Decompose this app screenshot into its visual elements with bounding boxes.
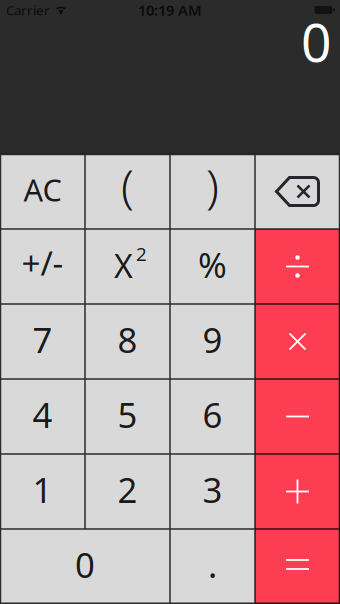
staticText: 8 (117, 316, 137, 362)
button[interactable]: 8 (85, 304, 170, 379)
button[interactable]: ) (170, 154, 255, 229)
button[interactable]: 1 (0, 454, 85, 529)
staticText: 9 (202, 316, 222, 362)
button[interactable]: . (170, 529, 255, 604)
button[interactable]: 5 (85, 379, 170, 454)
button[interactable]: 3 (170, 454, 255, 529)
staticText: 0 (301, 6, 332, 77)
staticText: 2 (117, 466, 137, 512)
staticText: 2 (136, 241, 147, 266)
staticText: 1 (32, 466, 52, 512)
staticText: +/- (21, 240, 63, 285)
button[interactable]: 9 (170, 304, 255, 379)
button[interactable]: 0 (0, 529, 170, 604)
button[interactable]: X (85, 229, 170, 304)
staticText: 0 (75, 541, 95, 587)
staticText: AC (23, 169, 61, 210)
staticText: Carrier (6, 1, 50, 19)
staticText: ) (206, 154, 219, 216)
button[interactable]: AC (0, 154, 85, 229)
button[interactable]: 7 (0, 304, 85, 379)
staticText: . (208, 541, 217, 587)
staticText: 6 (202, 391, 222, 437)
button[interactable]: ( (85, 154, 170, 229)
button[interactable]: Subtract (255, 379, 340, 454)
staticText: 3 (202, 466, 222, 512)
button[interactable]: Divide (255, 229, 340, 304)
staticText: 7 (32, 316, 52, 362)
button[interactable]: Equals (255, 529, 340, 604)
button[interactable]: 6 (170, 379, 255, 454)
button[interactable]: 4 (0, 379, 85, 454)
staticText: 4 (32, 391, 52, 437)
staticText: X (114, 244, 133, 287)
staticText: 5 (117, 391, 137, 437)
button[interactable]: 2 (85, 454, 170, 529)
button[interactable]: % (170, 229, 255, 304)
button[interactable]: Multiply (255, 304, 340, 379)
button[interactable]: Add (255, 454, 340, 529)
button[interactable]: +/- (0, 229, 85, 304)
staticText: ( (121, 154, 134, 216)
staticText: % (198, 241, 227, 287)
staticText: 10:19 AM (138, 0, 202, 20)
button[interactable]: Delete (255, 154, 340, 229)
